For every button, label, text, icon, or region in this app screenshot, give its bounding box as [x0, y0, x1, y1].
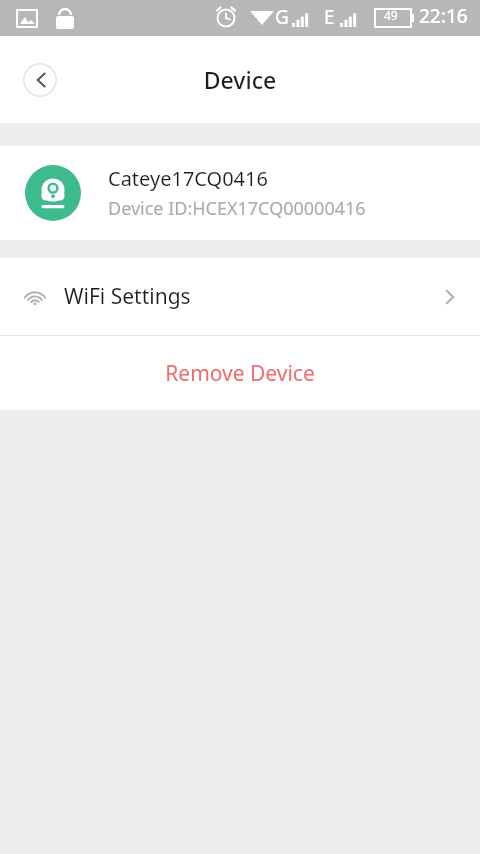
- staticText: Device ID:HCEX17CQ00000416: [108, 196, 366, 221]
- button[interactable]: WiFi Settings: [0, 258, 480, 335]
- staticText: WiFi Settings: [64, 282, 191, 311]
- staticText: E: [324, 4, 335, 30]
- button[interactable]: Remove Device: [0, 336, 480, 410]
- button[interactable]: Cateye17CQ0416: [0, 146, 480, 240]
- staticText: 22:16: [419, 3, 468, 29]
- staticText: 49: [384, 7, 398, 23]
- staticText: Remove Device: [165, 359, 315, 388]
- staticText: G: [275, 4, 289, 30]
- button[interactable]: Back: [23, 63, 57, 97]
- staticText: Device: [0, 64, 480, 95]
- staticText: Cateye17CQ0416: [108, 165, 268, 192]
